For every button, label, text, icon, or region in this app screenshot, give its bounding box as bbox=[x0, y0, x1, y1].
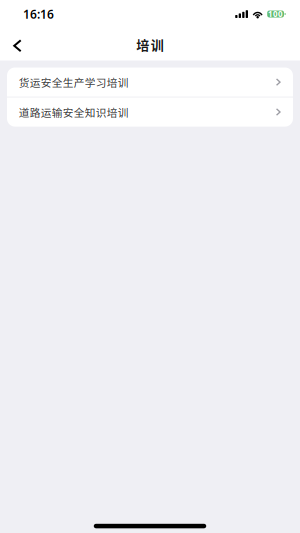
staticText: 100 bbox=[268, 9, 283, 19]
staticText: 道路运输安全知识培训 bbox=[19, 104, 129, 120]
staticText: 16:16 bbox=[23, 6, 54, 22]
staticText: 培训 bbox=[136, 35, 164, 54]
button[interactable]: Back bbox=[3, 28, 31, 60]
button[interactable]: 货运安全生产学习培训 bbox=[7, 67, 293, 97]
staticText: 货运安全生产学习培训 bbox=[19, 74, 129, 90]
button[interactable]: 道路运输安全知识培训 bbox=[7, 97, 293, 127]
